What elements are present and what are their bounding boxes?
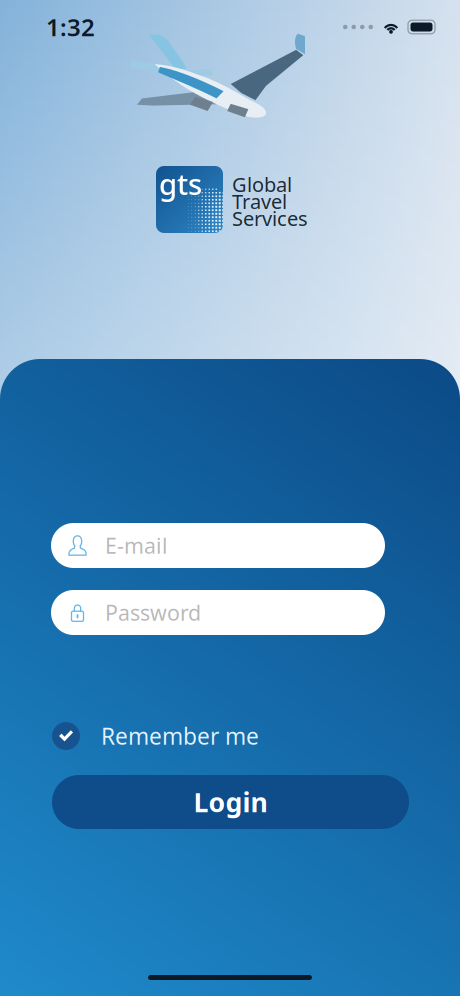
staticText: Travel [232,188,287,215]
button[interactable]: Remember me [52,721,409,751]
staticText: Services [232,205,308,232]
staticText: E-mail [105,531,168,560]
staticText: Global [232,171,292,198]
staticText: 1:32 [46,11,95,43]
button[interactable]: Password [51,590,385,635]
staticText: Remember me [101,721,259,751]
staticText: Password [105,598,201,627]
button[interactable]: Login [52,775,409,829]
staticText: gts [159,164,202,203]
staticText: Login [193,784,267,820]
button[interactable]: E-mail [51,523,385,568]
